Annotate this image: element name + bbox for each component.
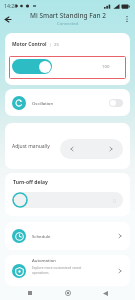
staticText: Explore more customized smart operations — [32, 265, 82, 275]
staticText: Schedule — [32, 233, 51, 239]
button[interactable]: Back — [1, 13, 14, 26]
staticText: Motor Control — [12, 41, 47, 48]
button[interactable]: Fan speed slider — [12, 59, 52, 74]
button[interactable]: Back — [98, 286, 112, 300]
button[interactable]: Schedule — [5, 222, 130, 250]
button[interactable]: Recents — [23, 286, 37, 300]
staticText: Oscillation — [32, 100, 54, 106]
button[interactable]: Oscillation — [5, 89, 130, 116]
button[interactable]: More options — [121, 13, 133, 25]
staticText: 14:28 — [4, 2, 18, 9]
staticText: Automation — [32, 257, 56, 263]
staticText: 100 — [102, 63, 110, 69]
staticText: Mi Smart Standing Fan 2 — [30, 11, 106, 20]
staticText: Adjust manually — [12, 143, 50, 150]
staticText: Connected — [57, 21, 79, 27]
button[interactable]: Home — [61, 286, 75, 300]
button[interactable]: Rotate left — [66, 143, 78, 155]
button[interactable]: Automation — [5, 255, 130, 286]
staticText: 25 — [54, 42, 59, 48]
button[interactable]: Turn-off delay slider — [12, 192, 123, 208]
staticText: | — [49, 42, 52, 48]
staticText: Turn-off delay — [13, 179, 48, 186]
button[interactable]: Rotate right — [105, 143, 117, 155]
staticText: 0 — [113, 197, 116, 204]
